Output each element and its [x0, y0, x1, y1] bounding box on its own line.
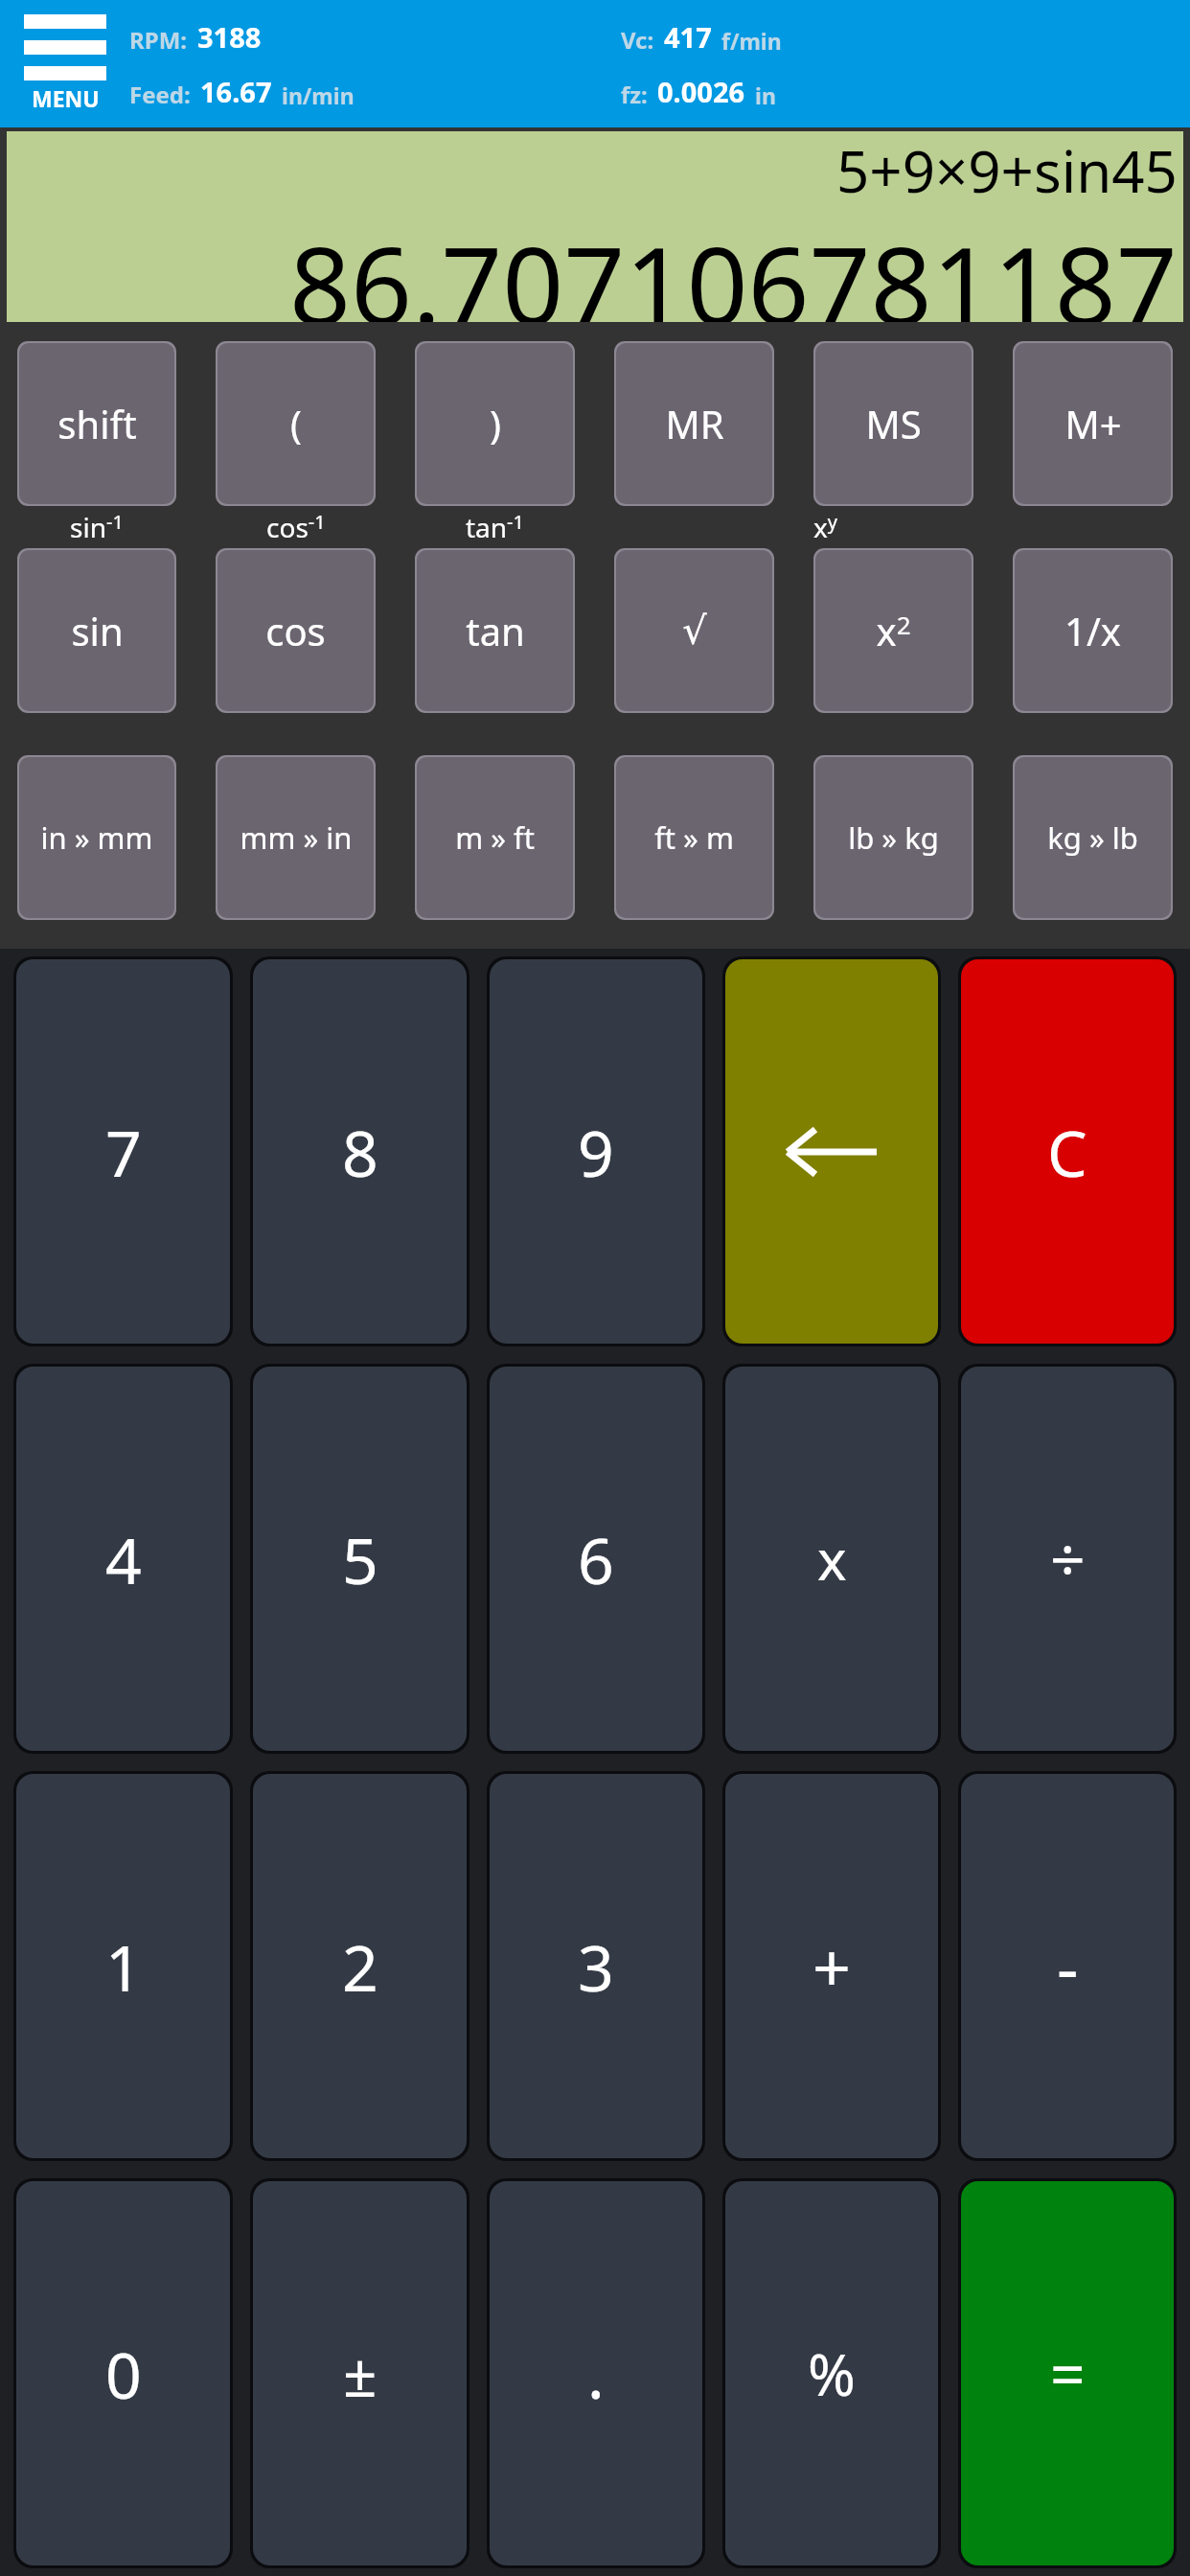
staticText: =	[1050, 2332, 1086, 2415]
button[interactable]: √	[616, 550, 772, 711]
staticText: sin-1	[70, 509, 124, 546]
staticText: 3188	[197, 18, 262, 56]
staticText: -	[1057, 1920, 1079, 2012]
staticText: 7	[105, 1109, 142, 1195]
staticText: )	[490, 398, 501, 449]
staticText: (	[290, 398, 302, 449]
staticText: 1/x	[1064, 605, 1121, 656]
staticText: 0.0026	[657, 73, 745, 110]
staticText: tan	[466, 605, 525, 656]
staticText: 5+9×9+sin45	[836, 131, 1178, 210]
staticText: MS	[865, 398, 922, 449]
staticText: x	[817, 1521, 847, 1597]
staticText: 9	[578, 1109, 614, 1195]
staticText: 4	[105, 1516, 142, 1602]
staticText: cos	[265, 605, 326, 656]
button[interactable]: 0	[16, 2181, 230, 2565]
button[interactable]: 3	[490, 1774, 702, 2158]
staticText: x2	[876, 605, 911, 656]
button[interactable]: %	[725, 2181, 938, 2565]
staticText: m » ft	[455, 817, 535, 858]
staticText: 3	[578, 1923, 614, 2010]
staticText: %	[808, 2334, 856, 2413]
button[interactable]: )	[417, 343, 573, 504]
staticText: 1	[105, 1923, 142, 2010]
staticText: Feed:	[129, 79, 191, 110]
button[interactable]: 1	[16, 1774, 230, 2158]
button[interactable]: =	[961, 2181, 1174, 2565]
staticText: M+	[1064, 398, 1122, 449]
button[interactable]: -	[961, 1774, 1174, 2158]
button[interactable]: 6	[490, 1367, 702, 1751]
button[interactable]: in » mm	[19, 757, 174, 918]
button[interactable]: 1/x	[1015, 550, 1171, 711]
button[interactable]: Backspace	[725, 959, 938, 1344]
staticText: RPM:	[129, 24, 188, 56]
staticText: 2	[342, 1923, 378, 2010]
button[interactable]: 8	[253, 959, 467, 1344]
button[interactable]: ±	[253, 2181, 467, 2565]
button[interactable]: x2	[815, 550, 972, 711]
staticText: 8	[342, 1109, 378, 1195]
staticText: C	[1047, 1109, 1087, 1195]
button[interactable]: 9	[490, 959, 702, 1344]
staticText: in » mm	[40, 817, 153, 858]
staticText: in/min	[282, 80, 355, 110]
button[interactable]: .	[490, 2181, 702, 2565]
staticText: sin	[71, 605, 124, 656]
button[interactable]: 5	[253, 1367, 467, 1751]
staticText: 86.707106781187	[289, 210, 1178, 322]
staticText: MENU	[32, 83, 100, 113]
button[interactable]: kg » lb	[1015, 757, 1171, 918]
button[interactable]: MS	[815, 343, 972, 504]
staticText: cos-1	[266, 509, 326, 546]
staticText: kg » lb	[1047, 817, 1138, 858]
staticText: 5	[342, 1516, 378, 1602]
staticText: xy	[813, 509, 838, 546]
staticText: √	[682, 609, 707, 654]
button[interactable]: tan	[417, 550, 573, 711]
button[interactable]: cos	[217, 550, 374, 711]
button[interactable]: 2	[253, 1774, 467, 2158]
button[interactable]: Menu	[0, 0, 129, 127]
button[interactable]: sin	[19, 550, 174, 711]
staticText: ±	[343, 2334, 378, 2414]
staticText: ft » m	[654, 817, 734, 858]
button[interactable]: +	[725, 1774, 938, 2158]
button[interactable]: mm » in	[217, 757, 374, 918]
button[interactable]: lb » kg	[815, 757, 972, 918]
button[interactable]: (	[217, 343, 374, 504]
button[interactable]: m » ft	[417, 757, 573, 918]
staticText: 0	[105, 2331, 142, 2417]
button[interactable]: M+	[1015, 343, 1171, 504]
staticText: 417	[664, 18, 712, 56]
staticText: in	[755, 80, 776, 110]
button[interactable]: 4	[16, 1367, 230, 1751]
staticText: MR	[665, 398, 724, 449]
button[interactable]: ÷	[961, 1367, 1174, 1751]
staticText: +	[812, 1920, 852, 2012]
staticText: tan-1	[466, 509, 525, 546]
button[interactable]: ft » m	[616, 757, 772, 918]
button[interactable]: shift	[19, 343, 174, 504]
staticText: ÷	[1050, 1517, 1086, 1600]
staticText: shift	[57, 398, 137, 449]
staticText: 16.67	[200, 73, 272, 110]
staticText: fz:	[621, 79, 648, 110]
staticText: Vc:	[621, 24, 654, 56]
button[interactable]: 7	[16, 959, 230, 1344]
staticText: lb » kg	[848, 817, 939, 858]
button[interactable]: C	[961, 959, 1174, 1344]
staticText: .	[587, 2331, 605, 2417]
staticText: 6	[578, 1516, 614, 1602]
staticText: f/min	[721, 26, 782, 56]
button[interactable]: x	[725, 1367, 938, 1751]
staticText: mm » in	[240, 817, 353, 858]
button[interactable]: MR	[616, 343, 772, 504]
